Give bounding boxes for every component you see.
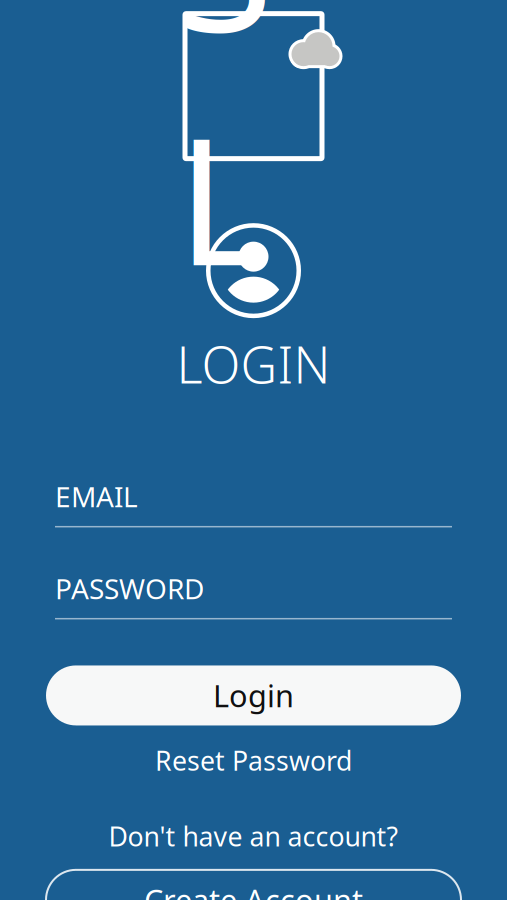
staticText: Don't have an account? bbox=[108, 818, 398, 854]
button[interactable]: Create Account bbox=[46, 870, 461, 900]
button[interactable]: Reset Password bbox=[46, 745, 461, 775]
staticText: Create Account bbox=[144, 879, 363, 900]
staticText: LOGIN bbox=[176, 330, 330, 397]
staticText: PASSWORD bbox=[55, 570, 204, 607]
staticText: SL bbox=[176, 0, 330, 314]
button[interactable]: Login bbox=[46, 665, 461, 725]
staticText: EMAIL bbox=[55, 478, 138, 515]
staticText: Login bbox=[213, 675, 294, 716]
staticText: Reset Password bbox=[155, 743, 352, 778]
